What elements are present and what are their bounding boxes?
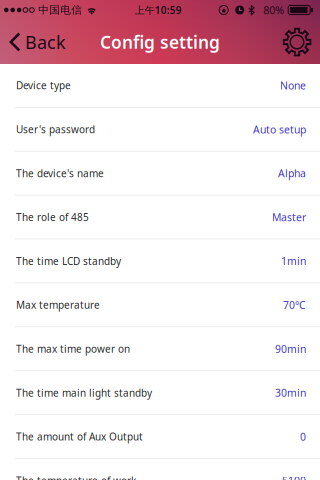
staticText: Device type — [16, 79, 71, 92]
button[interactable]: Device type — [0, 64, 320, 108]
staticText: The time LCD standby — [16, 254, 121, 268]
staticText: 30min — [275, 386, 306, 400]
button[interactable]: The time main light standby — [0, 371, 320, 415]
staticText: 70°C — [283, 298, 306, 312]
button[interactable]: Back — [0, 20, 74, 64]
staticText: 80% — [263, 3, 284, 17]
staticText: 上午10:59 — [135, 3, 182, 17]
button[interactable]: The time LCD standby — [0, 240, 320, 283]
staticText: 0 — [300, 430, 306, 444]
staticText: 1min — [281, 254, 306, 268]
staticText: The device's name — [16, 166, 104, 180]
button[interactable]: Settings — [276, 20, 320, 64]
staticText: The max time power on — [16, 342, 130, 356]
button[interactable]: The temperature of work — [0, 459, 320, 480]
staticText: Auto setup — [253, 122, 306, 136]
staticText: User's password — [16, 122, 95, 136]
staticText: None — [280, 78, 306, 93]
staticText: The amount of Aux Output — [16, 430, 143, 443]
staticText: 5100 — [282, 473, 306, 480]
staticText: The role of 485 — [16, 210, 89, 224]
button[interactable]: User's password — [0, 108, 320, 152]
button[interactable]: The device's name — [0, 152, 320, 196]
staticText: Max temperature — [16, 298, 100, 312]
button[interactable]: The role of 485 — [0, 196, 320, 240]
staticText: Master — [272, 210, 306, 224]
button[interactable]: The amount of Aux Output — [0, 415, 320, 459]
staticText: Alpha — [278, 166, 306, 180]
staticText: The time main light standby — [16, 386, 152, 399]
staticText: Back — [25, 30, 66, 54]
staticText: Config setting — [100, 30, 220, 54]
staticText: 90min — [275, 342, 306, 356]
button[interactable]: Max temperature — [0, 283, 320, 327]
staticText: 中国电信 — [38, 3, 82, 17]
staticText: The temperature of work — [16, 474, 136, 480]
button[interactable]: The max time power on — [0, 327, 320, 371]
